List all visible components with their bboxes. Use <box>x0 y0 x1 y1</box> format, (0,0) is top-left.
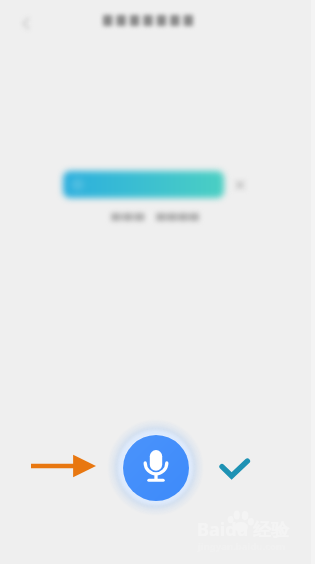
button[interactable]: Close <box>232 177 248 193</box>
button[interactable]: Confirm <box>219 455 249 477</box>
other: 点击完成转文字 <box>111 213 199 221</box>
other: 录音转文字文件 <box>103 15 193 26</box>
button[interactable]: Back <box>15 13 35 33</box>
button[interactable]: Record <box>123 435 189 501</box>
